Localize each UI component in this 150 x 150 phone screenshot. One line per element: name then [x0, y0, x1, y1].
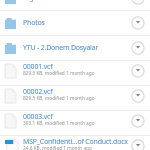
button[interactable]: More options: [131, 139, 145, 150]
staticText: 00002.vcf: [23, 87, 53, 97]
staticText: 829.5 KB, modified 1 month ago: [23, 70, 95, 76]
button[interactable]: 00001.vcf: [0, 61, 150, 86]
staticText: MSP_Confidenti…of Conduct.docx: [23, 137, 128, 147]
button[interactable]: 00002.vcf: [0, 86, 150, 111]
button[interactable]: YTU - 2.Donem Dosyalar: [0, 36, 150, 61]
staticText: 24.6 KB, modified 1 month ago: [23, 145, 92, 150]
button[interactable]: More options: [131, 114, 145, 128]
button[interactable]: More options: [131, 64, 145, 78]
button[interactable]: More options: [131, 0, 145, 5]
button[interactable]: MSP_Confidenti…of Conduct.docx: [0, 136, 150, 150]
staticText: 393.1 KB, modified 1 month ago: [23, 120, 95, 126]
button[interactable]: More options: [131, 89, 145, 103]
staticText: 00001.vcf: [23, 62, 53, 72]
staticText: 829.5 KB, modified 1 month ago: [23, 95, 95, 101]
staticText: Photos: [23, 18, 45, 28]
button[interactable]: 00003.vcf: [0, 111, 150, 136]
staticText: Ingilizce: [23, 0, 49, 3]
button[interactable]: Ingilizce: [0, 0, 150, 11]
button[interactable]: Photos: [0, 11, 150, 36]
button[interactable]: More options: [131, 41, 145, 55]
staticText: 00003.vcf: [23, 112, 53, 122]
staticText: YTU - 2.Donem Dosyalar: [23, 43, 99, 53]
button[interactable]: More options: [131, 16, 145, 30]
